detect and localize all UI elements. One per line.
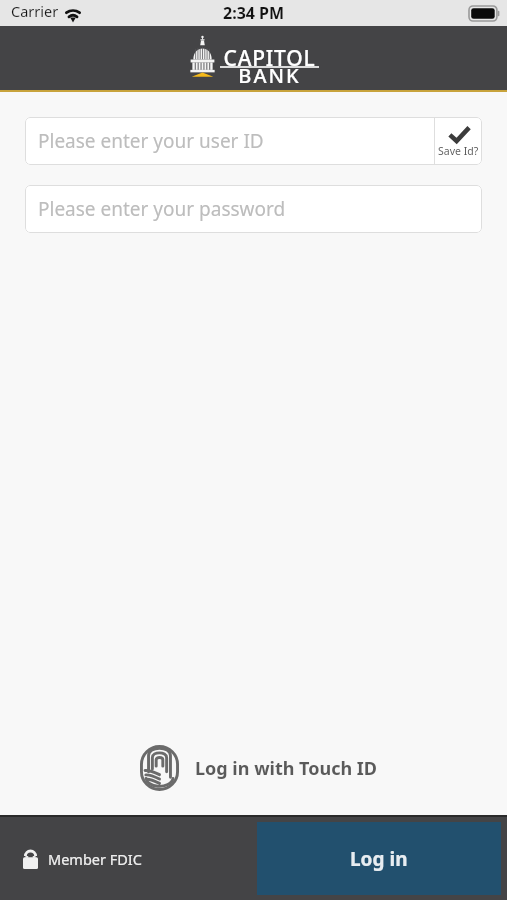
staticText: Save Id? — [438, 144, 479, 158]
button[interactable]: Log in with Touch ID — [140, 745, 507, 791]
staticText: CAPITOL — [220, 44, 319, 73]
button[interactable]: Member FDIC — [23, 849, 257, 869]
button[interactable]: Save Id? — [435, 117, 482, 165]
staticText: Member FDIC — [48, 849, 142, 869]
staticText: Log in — [350, 846, 408, 872]
staticText: Carrier — [11, 1, 59, 21]
button[interactable]: Please enter your password — [25, 185, 482, 233]
staticText: 2:34 PM — [223, 2, 285, 24]
staticText: Log in with Touch ID — [195, 756, 378, 781]
staticText: Please enter your user ID — [38, 128, 264, 154]
button[interactable]: Log in — [257, 822, 501, 895]
staticText: BANK — [220, 62, 319, 89]
staticText: Please enter your password — [38, 196, 286, 222]
button[interactable]: Please enter your user ID — [25, 117, 434, 165]
